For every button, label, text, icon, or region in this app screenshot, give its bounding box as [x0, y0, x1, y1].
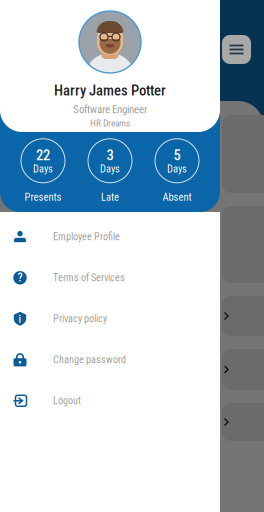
button[interactable]: ?: [0, 257, 220, 298]
button[interactable]: Employee Profile: [0, 216, 220, 257]
staticText: 5: [173, 147, 180, 164]
staticText: Privacy policy: [53, 313, 107, 325]
staticText: Logout: [53, 395, 81, 407]
staticText: Presents: [24, 191, 61, 203]
staticText: Late: [101, 191, 119, 203]
staticText: Harry James Potter: [54, 82, 166, 99]
staticText: 22: [36, 147, 50, 164]
staticText: ?: [17, 270, 22, 284]
staticText: Software Engineer: [73, 103, 147, 116]
staticText: Change password: [53, 354, 126, 366]
staticText: Absent: [162, 191, 191, 203]
staticText: Days: [33, 163, 53, 175]
button[interactable]: Logout: [0, 380, 220, 421]
staticText: Days: [167, 163, 187, 175]
button[interactable]: Change password: [0, 339, 220, 380]
staticText: i: [18, 313, 21, 325]
staticText: 3: [106, 147, 113, 164]
staticText: Terms of Services: [53, 272, 125, 284]
button[interactable]: Open menu: [222, 35, 251, 64]
staticText: Days: [100, 163, 120, 175]
staticText: HR Dreams: [90, 118, 130, 129]
staticText: Employee Profile: [53, 231, 120, 243]
button[interactable]: i: [0, 298, 220, 339]
